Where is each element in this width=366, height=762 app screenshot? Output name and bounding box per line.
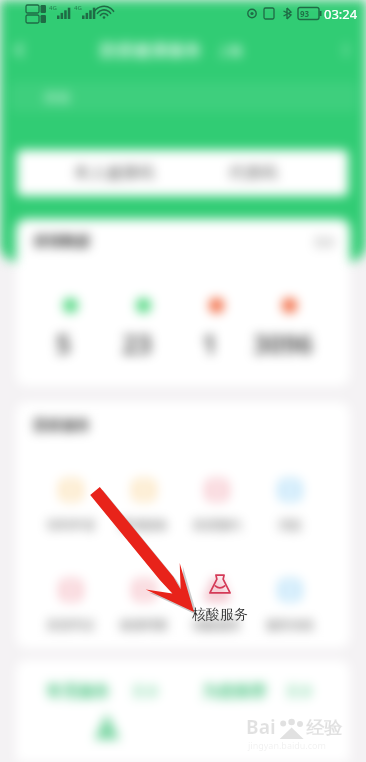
button[interactable]: 疫苗预约 [180, 450, 253, 550]
staticText: 03:24 [324, 5, 358, 23]
button[interactable]: 核酸服务 [183, 572, 256, 634]
staticText: 93 [300, 8, 310, 19]
staticText: 核酸服务 [192, 606, 248, 624]
staticText: 4G [74, 4, 82, 12]
staticText: 疫情数据 [34, 233, 90, 251]
button[interactable]: 搜索 [10, 82, 358, 112]
button[interactable]: 本人健康码 [51, 150, 177, 196]
button[interactable]: 消息 [253, 450, 326, 550]
staticText: jingyan.baidu.com [248, 739, 326, 751]
staticText: 核酸服务 [193, 617, 241, 632]
staticText: 转码申请 [47, 517, 95, 532]
button[interactable]: 代查码 [192, 150, 314, 196]
button[interactable]: 3096 [253, 265, 326, 386]
staticText: 疫苗凭证 [47, 617, 95, 632]
staticText: 23 [122, 326, 152, 361]
staticText: 防疫健康服务 [100, 40, 202, 61]
staticText: 上海 [218, 43, 242, 58]
staticText: 服务热线 [266, 617, 314, 632]
staticText: 疫苗预约 [193, 517, 241, 532]
staticText: 更多 [314, 235, 336, 249]
staticText: 代查码 [229, 163, 277, 183]
staticText: 3096 [253, 326, 313, 361]
button[interactable]: 事项报备 [107, 450, 180, 550]
staticText: 事项报备 [120, 517, 168, 532]
staticText: 4G [49, 4, 57, 12]
staticText: 搜索 [44, 89, 70, 105]
staticText: Bai [246, 714, 276, 740]
staticText: 常用服务 [46, 682, 110, 702]
staticText: 更多 [132, 683, 160, 701]
button[interactable]: 服务热线 [253, 550, 326, 648]
staticText: 健康档案 [120, 617, 168, 632]
staticText: 更多 [286, 683, 314, 701]
button[interactable]: 更多 [314, 235, 336, 249]
button[interactable]: 23 [107, 265, 180, 386]
button[interactable]: 转码申请 [34, 450, 107, 550]
button[interactable]: More [326, 30, 366, 70]
staticText: 本人健康码 [74, 163, 154, 183]
button[interactable]: 1 [180, 265, 253, 386]
button[interactable]: 核酸服务 [180, 550, 253, 648]
staticText: 5 [56, 326, 71, 361]
staticText: 消息 [278, 517, 302, 532]
staticText: 1 [202, 326, 217, 361]
button[interactable]: Service [92, 713, 122, 743]
button[interactable]: Back [0, 30, 40, 70]
staticText: 防疫服务 [34, 417, 90, 435]
staticText: 经验 [306, 717, 342, 740]
button[interactable]: 健康档案 [107, 550, 180, 648]
staticText: 为您推荐 [202, 682, 266, 702]
button[interactable]: 疫苗凭证 [34, 550, 107, 648]
button[interactable]: 5 [34, 265, 107, 386]
